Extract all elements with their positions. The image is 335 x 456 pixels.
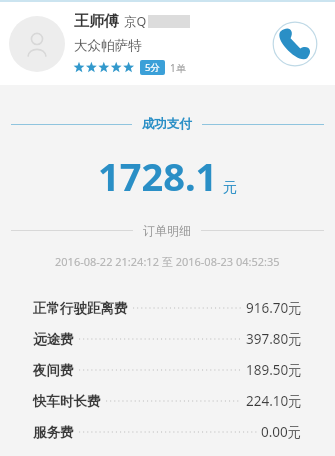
staticText: 京Q [124,13,147,30]
staticText: 订单明细 [143,223,191,238]
staticText: 王师傅 [74,12,119,31]
staticText: 397.80元 [246,330,302,348]
button[interactable]: 快车时长费 [0,385,335,416]
staticText: 服务费 [33,424,74,441]
button[interactable]: 服务费 [0,416,335,447]
button[interactable]: 王师傅 [0,2,335,85]
staticText: 1单 [170,61,186,75]
staticText: 夜间费 [33,362,74,379]
staticText: 元 [223,179,237,197]
staticText: 0.00元 [261,423,302,441]
staticText: 2016-08-22 21:24:12 至 2016-08-23 04:52:3… [55,254,280,269]
staticText: 快车时长费 [33,393,101,410]
staticText: 224.10元 [246,392,302,410]
staticText: 189.50元 [246,361,302,379]
button[interactable]: 正常行驶距离费 [0,292,335,323]
staticText: 远途费 [33,331,74,348]
button[interactable]: Call driver [269,18,321,70]
staticText: 大众帕萨特 [74,37,142,54]
staticText: 916.70元 [246,299,302,317]
staticText: 1728.1 [98,150,218,202]
staticText: 5分 [145,61,160,74]
button[interactable]: 远途费 [0,323,335,354]
staticText: 成功支付 [142,116,192,132]
button[interactable]: 夜间费 [0,354,335,385]
staticText: 正常行驶距离费 [33,300,128,317]
